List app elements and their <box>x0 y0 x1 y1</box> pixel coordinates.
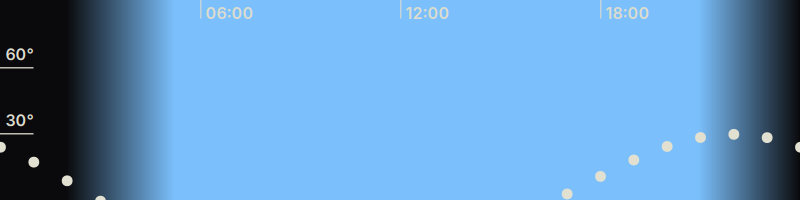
staticText: 06:00 <box>205 3 253 23</box>
staticText: 12:00 <box>405 3 449 23</box>
staticText: 30° <box>5 111 33 130</box>
staticText: 60° <box>5 45 33 64</box>
staticText: 18:00 <box>605 3 649 23</box>
